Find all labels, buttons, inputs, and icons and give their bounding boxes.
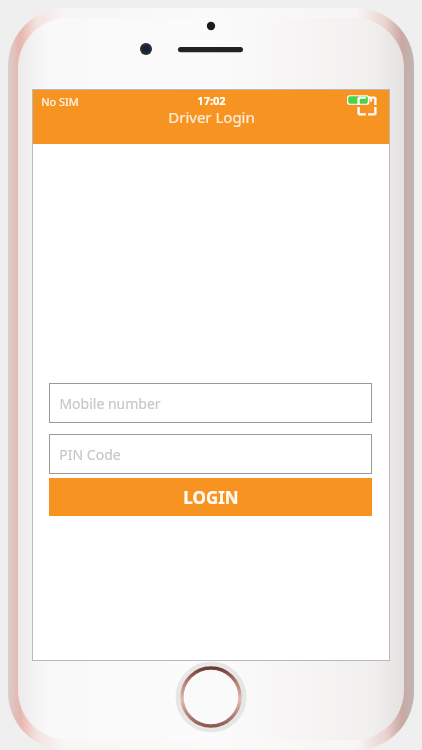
staticText: No SIM — [41, 94, 79, 109]
button[interactable]: PIN Code — [49, 434, 372, 474]
button[interactable]: Full screen — [353, 92, 381, 120]
button[interactable]: Mobile number — [49, 383, 372, 423]
staticText: Driver Login — [168, 107, 255, 127]
staticText: PIN Code — [59, 445, 121, 464]
staticText: LOGIN — [183, 486, 239, 509]
staticText: Mobile number — [59, 394, 161, 413]
button[interactable]: LOGIN — [49, 478, 372, 516]
staticText: 17:02 — [197, 93, 226, 108]
